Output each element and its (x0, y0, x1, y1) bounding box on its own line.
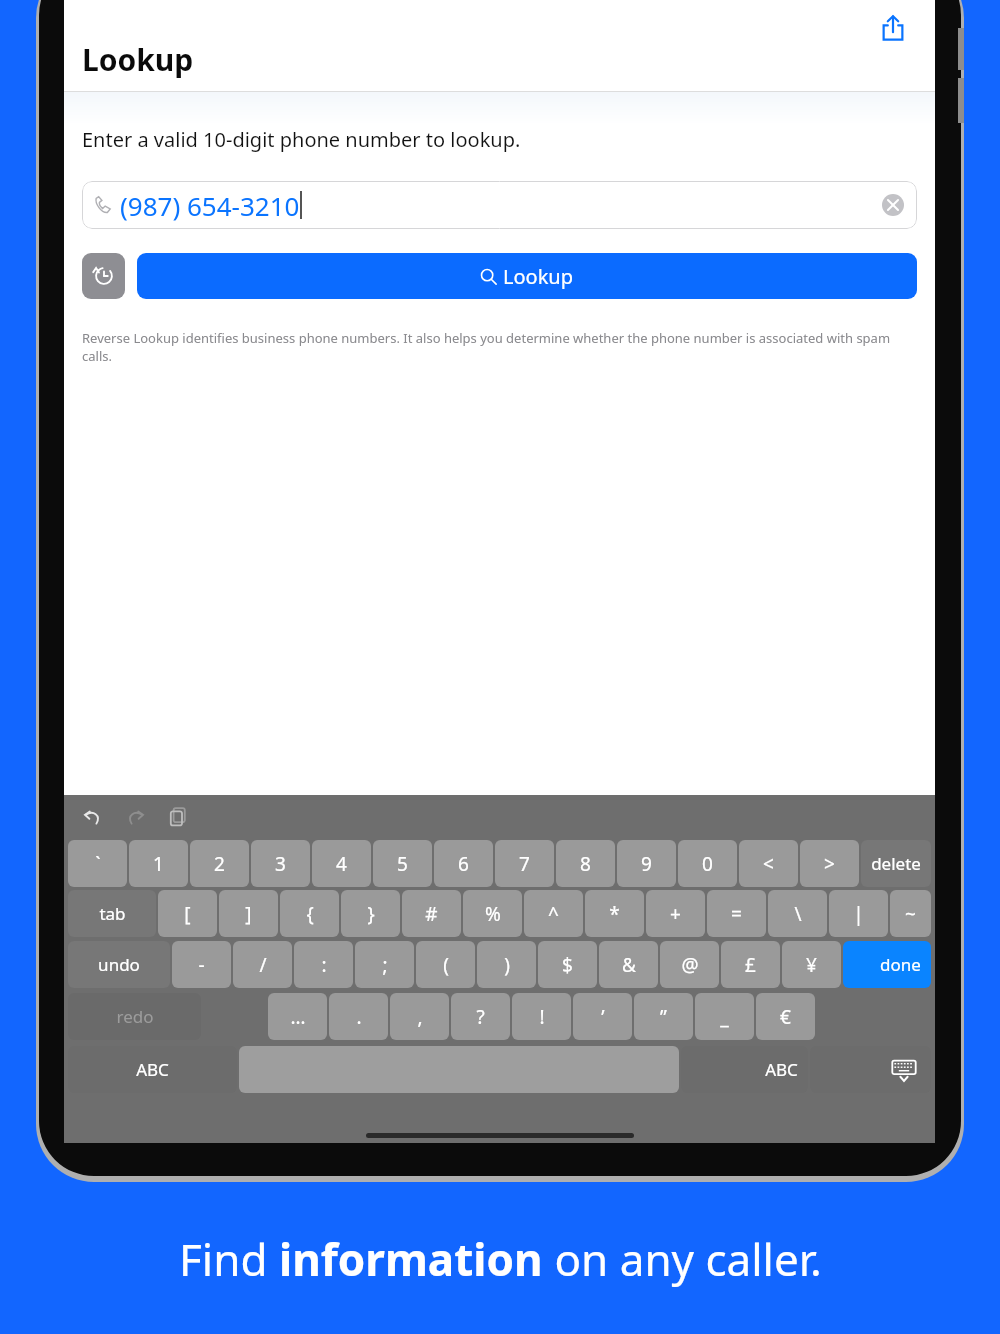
staticText: \ (794, 901, 802, 927)
button[interactable]: { (280, 890, 339, 937)
button[interactable]: History (82, 253, 125, 299)
staticText: done (880, 953, 921, 976)
button[interactable]: ! (512, 993, 571, 1040)
button[interactable]: ] (219, 890, 278, 937)
button[interactable]: $ (538, 941, 597, 988)
staticText: ] (245, 901, 252, 927)
button[interactable]: ( (416, 941, 475, 988)
button[interactable]: > (800, 840, 859, 887)
button[interactable]: 9 (617, 840, 676, 887)
button[interactable]: # (402, 890, 461, 937)
staticText: on any caller. (543, 1229, 822, 1289)
button[interactable]: - (172, 941, 231, 988)
button[interactable]: ? (451, 993, 510, 1040)
staticText: redo (116, 1005, 154, 1028)
button[interactable]: } (341, 890, 400, 937)
staticText: * (609, 901, 620, 927)
button[interactable]: . (329, 993, 388, 1040)
button[interactable]: ; (355, 941, 414, 988)
staticText: + (670, 901, 681, 927)
button[interactable]: Lookup (137, 253, 917, 299)
button[interactable]: ^ (524, 890, 583, 937)
staticText: Find (179, 1229, 279, 1289)
staticText: 3 (275, 851, 286, 877)
button[interactable]: % (463, 890, 522, 937)
staticText: (987) 654-3210 (120, 188, 300, 223)
staticText: 9 (641, 851, 652, 877)
staticText: 2 (214, 851, 225, 877)
staticText: 0 (702, 851, 713, 877)
button[interactable]: … (268, 993, 327, 1040)
button[interactable]: Share (873, 8, 913, 48)
button[interactable]: Clear text (881, 193, 905, 217)
button[interactable]: / (233, 941, 292, 988)
button[interactable]: + (646, 890, 705, 937)
button[interactable]: @ (660, 941, 719, 988)
staticText: $ (562, 952, 573, 978)
staticText: } (367, 901, 375, 927)
button[interactable]: ) (477, 941, 536, 988)
button[interactable]: < (739, 840, 798, 887)
button[interactable]: (987) 654-3210 (82, 181, 917, 229)
button[interactable]: : (294, 941, 353, 988)
button[interactable]: undo (68, 941, 170, 988)
button[interactable]: delete (861, 840, 931, 887)
button[interactable]: ` (68, 840, 127, 887)
staticText: < (763, 851, 774, 877)
staticText: £ (745, 952, 756, 978)
button[interactable]: 0 (678, 840, 737, 887)
button[interactable]: £ (721, 941, 780, 988)
button[interactable]: ABC (68, 1046, 237, 1093)
staticText: _ (720, 1004, 729, 1030)
button[interactable]: ¥ (782, 941, 841, 988)
button[interactable]: * (585, 890, 644, 937)
staticText: 7 (519, 851, 530, 877)
button[interactable]: Undo (78, 803, 106, 831)
staticText: ( (443, 952, 449, 978)
staticText: … (290, 1004, 306, 1030)
staticText: > (824, 851, 835, 877)
staticText: 8 (580, 851, 591, 877)
button[interactable]: ~ (890, 890, 931, 937)
button[interactable]: \ (768, 890, 827, 937)
staticText: undo (98, 953, 140, 976)
staticText: , (417, 1004, 423, 1030)
button[interactable]: 2 (190, 840, 249, 887)
button[interactable]: | (829, 890, 888, 937)
button[interactable]: 8 (556, 840, 615, 887)
button[interactable]: 1 (129, 840, 188, 887)
button[interactable]: ABC (681, 1046, 808, 1093)
button[interactable]: Hide keyboard (810, 1046, 931, 1093)
button[interactable]: tab (68, 890, 156, 937)
staticText: [ (184, 901, 191, 927)
button[interactable]: ’ (573, 993, 632, 1040)
button[interactable]: redo (68, 993, 201, 1040)
button[interactable]: 6 (434, 840, 493, 887)
button[interactable]: & (599, 941, 658, 988)
button[interactable]: Redo (122, 803, 150, 831)
staticText: & (622, 952, 636, 978)
button[interactable]: ” (634, 993, 693, 1040)
staticText: Lookup (82, 39, 194, 80)
staticText: information (279, 1229, 543, 1289)
staticText: # (425, 901, 438, 927)
button[interactable]: Paste (164, 803, 192, 831)
staticText: ) (504, 952, 510, 978)
button[interactable]: 5 (373, 840, 432, 887)
staticText: € (780, 1004, 791, 1030)
button[interactable]: 4 (312, 840, 371, 887)
staticText: : (321, 952, 327, 978)
button[interactable]: [ (158, 890, 217, 937)
button[interactable]: = (707, 890, 766, 937)
button[interactable]: 3 (251, 840, 310, 887)
button[interactable]: _ (695, 993, 754, 1040)
staticText: 5 (397, 851, 408, 877)
button[interactable]: done (843, 941, 931, 988)
button[interactable]: 7 (495, 840, 554, 887)
staticText: ^ (548, 901, 559, 927)
button[interactable]: , (390, 993, 449, 1040)
staticText: { (306, 901, 314, 927)
staticText: | (853, 901, 864, 927)
button[interactable]: € (756, 993, 815, 1040)
